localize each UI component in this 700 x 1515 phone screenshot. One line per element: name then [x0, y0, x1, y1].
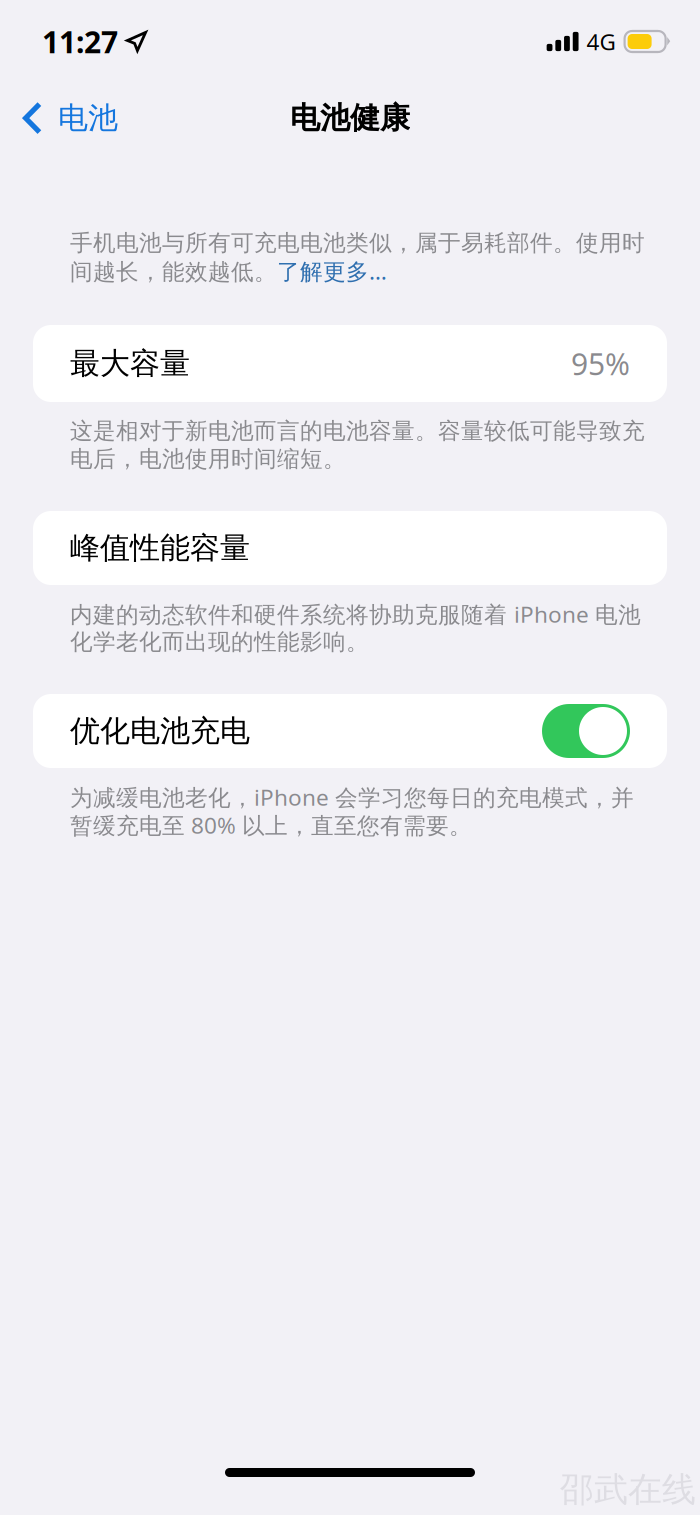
staticText: 间越长，能效越低。	[70, 258, 277, 286]
staticText: 最大容量	[70, 345, 190, 382]
staticText: 了解更多…	[277, 256, 387, 286]
staticText: 邵武在线	[560, 1468, 696, 1511]
staticText: 手机电池与所有可充电电池类似，属于易耗部件。使用时	[70, 229, 645, 257]
staticText: 优化电池充电	[70, 712, 250, 750]
staticText: 电池	[58, 99, 118, 137]
staticText: 电池健康	[290, 99, 410, 137]
staticText: 这是相对于新电池而言的电池容量。容量较低可能导致充	[70, 417, 645, 445]
staticText: 电后，电池使用时间缩短。	[70, 445, 346, 473]
staticText: 11:27	[42, 21, 118, 62]
staticText: 峰值性能容量	[70, 529, 250, 567]
button[interactable]: 优化电池充电	[542, 704, 630, 758]
staticText: 化学老化而出现的性能影响。	[70, 628, 369, 656]
staticText: 为减缓电池老化，iPhone 会学习您每日的充电模式，并	[70, 782, 634, 812]
staticText: 4G	[587, 26, 616, 57]
button[interactable]: 电池	[0, 89, 132, 147]
button[interactable]: 峰值性能容量	[70, 511, 630, 585]
button[interactable]: 最大容量	[70, 325, 630, 402]
staticText: 95%	[571, 343, 630, 384]
staticText: 内建的动态软件和硬件系统将协助克服随着 iPhone 电池	[70, 599, 641, 629]
staticText: 暂缓充电至 80% 以上，直至您有需要。	[70, 810, 472, 840]
button[interactable]: 了解更多…	[277, 256, 387, 286]
